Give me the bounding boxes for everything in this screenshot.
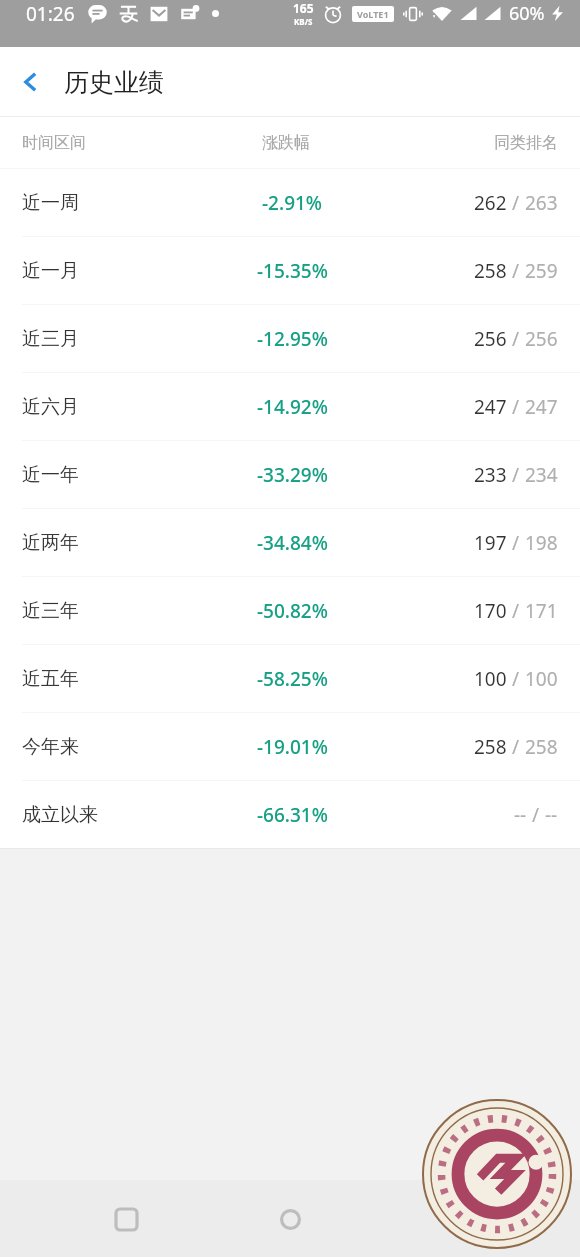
button[interactable]: 近一月 [0,237,580,304]
staticText: VoLTE1 [357,8,389,20]
button[interactable]: 成立以来 [0,781,580,848]
staticText: 近一周 [22,191,79,215]
staticText: 234 [525,462,558,488]
staticText: 198 [525,530,558,556]
button[interactable]: 近六月 [0,373,580,440]
staticText: 171 [525,598,558,624]
staticText: -2.91% [262,190,323,216]
staticText: 时间区间 [22,133,86,153]
staticText: 今年来 [22,735,79,759]
button[interactable]: Back [416,1181,492,1257]
staticText: / [512,598,520,624]
button[interactable]: 近三年 [0,577,580,644]
staticText: 263 [525,190,558,216]
button[interactable]: Home [252,1181,328,1257]
staticText: -- [545,802,558,828]
staticText: 近三月 [22,327,79,351]
staticText: 258 [525,734,558,760]
staticText: 近五年 [22,667,79,691]
staticText: -34.84% [257,530,328,556]
staticText: 100 [474,666,507,692]
staticText: 近两年 [22,531,79,555]
staticText: 涨跌幅 [262,133,310,153]
staticText: 256 [474,326,507,352]
staticText: -15.35% [257,258,328,284]
staticText: 262 [474,190,507,216]
staticText: 197 [474,530,507,556]
staticText: 100 [525,666,558,692]
staticText: -12.95% [257,326,328,352]
staticText: / [512,462,520,488]
staticText: -14.92% [257,394,328,420]
staticText: 成立以来 [22,803,98,827]
staticText: -33.29% [257,462,328,488]
staticText: / [512,190,520,216]
staticText: -58.25% [257,666,328,692]
staticText: / [532,802,540,828]
staticText: 247 [474,394,507,420]
staticText: / [512,326,520,352]
staticText: 258 [474,258,507,284]
staticText: -50.82% [257,598,328,624]
staticText: / [512,258,520,284]
button[interactable]: Back [0,51,62,113]
staticText: 01:26 [26,1,75,27]
staticText: 259 [525,258,558,284]
button[interactable]: 近一年 [0,441,580,508]
staticText: 256 [525,326,558,352]
staticText: 247 [525,394,558,420]
staticText: 233 [474,462,507,488]
staticText: -19.01% [257,734,328,760]
button[interactable]: 近两年 [0,509,580,576]
staticText: KB/S [294,16,313,27]
staticText: 近一月 [22,259,79,283]
staticText: -- [514,802,527,828]
staticText: 258 [474,734,507,760]
staticText: / [512,394,520,420]
staticText: / [512,530,520,556]
staticText: / [512,666,520,692]
staticText: -66.31% [257,802,328,828]
staticText: 同类排名 [494,133,558,153]
staticText: 近一年 [22,463,79,487]
button[interactable]: 近一周 [0,169,580,236]
staticText: 历史业绩 [64,67,164,98]
staticText: 170 [474,598,507,624]
button[interactable]: 近五年 [0,645,580,712]
staticText: / [512,734,520,760]
button[interactable]: 近三月 [0,305,580,372]
staticText: 165 [293,0,314,16]
staticText: 60% [509,1,545,26]
staticText: 近六月 [22,395,79,419]
button[interactable]: Recent apps [88,1181,164,1257]
staticText: 近三年 [22,599,79,623]
button[interactable]: 今年来 [0,713,580,780]
